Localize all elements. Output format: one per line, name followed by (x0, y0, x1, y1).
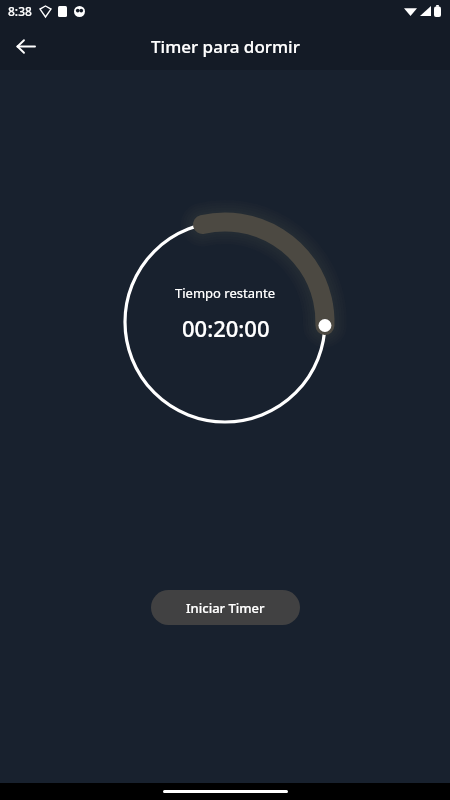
staticText: Iniciar Timer (186, 599, 265, 617)
staticText: 00:20:00 (182, 313, 270, 343)
staticText: Tiempo restante (175, 284, 276, 302)
staticText: 8:38 (8, 3, 32, 19)
button[interactable]: Back (6, 27, 44, 65)
staticText: Timer para dormir (151, 35, 300, 58)
button[interactable]: Iniciar Timer (151, 590, 300, 625)
